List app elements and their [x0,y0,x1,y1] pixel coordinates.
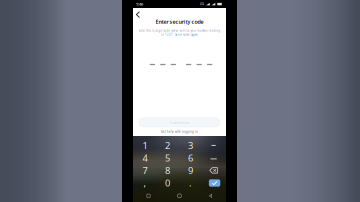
button[interactable]: 8 [156,164,178,177]
button[interactable]: 4 [134,152,156,164]
staticText: in 1247. [161,33,174,36]
staticText: 7 [142,164,147,177]
button[interactable]: 3 [179,139,201,152]
staticText: 4 [142,152,147,164]
staticText: 9 [188,164,193,177]
button[interactable]: 0 [156,177,178,189]
button[interactable]: 5 [156,152,178,164]
button[interactable]: Backspace [203,164,225,177]
staticText: 8 [165,164,170,177]
button[interactable]: Send code again [175,33,198,36]
staticText: Continue [170,120,189,125]
button[interactable]: Back [195,190,226,201]
staticText: , [143,177,146,189]
staticText: Enter the 6-digit code we've sent to you… [138,29,220,32]
button[interactable]: Home [164,190,195,201]
button[interactable]: , [134,177,156,189]
button[interactable]: . [179,177,201,189]
button[interactable]: Back [131,8,145,22]
button[interactable]: Continue [139,118,220,127]
button[interactable]: Get help with logging in [161,129,198,135]
button[interactable]: Space [203,153,225,165]
button[interactable]: Submit [204,177,226,189]
button[interactable]: 2 [156,139,178,152]
staticText: Send code again [175,33,198,36]
staticText: 6 [188,152,193,164]
button[interactable]: 7 [134,164,156,177]
staticText: 1 [142,139,147,152]
staticText: . [189,177,192,189]
staticText: 4G [200,2,204,6]
staticText: Enter security code [155,18,203,25]
button[interactable]: Dash [203,139,225,152]
button[interactable]: 6 [179,152,201,164]
staticText: Get help with logging in [161,130,198,133]
staticText: 3 [188,139,193,152]
button[interactable]: 9 [179,164,201,177]
staticText: 2 [165,139,170,152]
staticText: 5 [165,152,170,164]
staticText: 0 [165,177,170,189]
button[interactable]: Recents [133,190,164,201]
staticText: 9:48 [136,1,143,7]
button[interactable]: 1 [134,139,156,152]
